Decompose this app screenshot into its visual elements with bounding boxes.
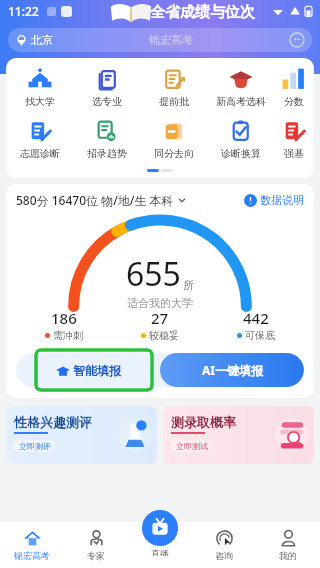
staticText: 可保底 (245, 329, 275, 342)
staticText: 提前批 (159, 95, 189, 108)
staticText: 立即测评 (19, 441, 51, 451)
button[interactable]: 专家 (64, 522, 128, 568)
button[interactable]: 同分去向 (140, 116, 207, 162)
staticText: 直播 (151, 548, 169, 556)
staticText: 智能填报 (73, 363, 121, 378)
staticText: 立即测试 (176, 441, 208, 451)
staticText: 数据说明 (260, 193, 304, 207)
staticText: 选专业 (92, 95, 122, 108)
button[interactable]: 招录趋势 (73, 116, 140, 162)
button[interactable]: 智能填报 (16, 353, 160, 387)
staticText: 北京 (31, 33, 53, 47)
button[interactable]: Customer service (290, 33, 304, 47)
staticText: 我的 (279, 550, 297, 561)
staticText: 专家 (87, 550, 105, 561)
button[interactable]: 直播 (142, 510, 178, 546)
button[interactable]: 我的 (256, 522, 320, 568)
button[interactable]: 性格兴趣测评 (6, 406, 157, 464)
staticText: 志愿诊断 (20, 147, 60, 160)
button[interactable]: 测录取概率 (163, 406, 314, 464)
staticText: 锦宏高考 (149, 33, 193, 47)
staticText: 同分去向 (154, 147, 194, 160)
staticText: 咨询 (215, 550, 233, 561)
button[interactable]: 数据说明 (244, 193, 304, 207)
staticText: 27 (151, 308, 169, 328)
staticText: 分数 (284, 95, 304, 108)
button[interactable]: 强基 (274, 116, 314, 162)
staticText: 找大学 (25, 95, 55, 108)
button[interactable]: 找大学 (6, 64, 73, 110)
staticText: 招录趋势 (87, 147, 127, 160)
staticText: 诊断换算 (221, 147, 261, 160)
staticText: 580分 16470位 物/地/生 本科 (16, 192, 174, 208)
staticText: 全省成绩与位次 (150, 3, 255, 22)
staticText: AI一键填报 (202, 362, 263, 378)
staticText: 较稳妥 (149, 329, 179, 342)
button[interactable]: 580分 16470位 物/地/生 本科 (16, 192, 187, 208)
staticText: 锦宏高考 (14, 550, 50, 561)
button[interactable]: 咨询 (192, 522, 256, 568)
staticText: 11:22 (8, 3, 39, 19)
staticText: 655 (126, 252, 181, 296)
button[interactable]: 诊断换算 (207, 116, 274, 162)
button[interactable]: 志愿诊断 (6, 116, 73, 162)
staticText: 需冲刺 (53, 329, 83, 342)
staticText: 所 (183, 278, 194, 292)
button[interactable]: 新高考选科 (207, 64, 274, 110)
button[interactable]: 提前批 (140, 64, 207, 110)
staticText: 新高考选科 (216, 95, 266, 108)
staticText: 442 (243, 308, 269, 328)
button[interactable]: 锦宏高考 (0, 522, 64, 568)
staticText: 适合我的大学 (127, 296, 193, 310)
staticText: 测录取概率 (171, 414, 236, 430)
staticText: 186 (51, 308, 77, 328)
button[interactable]: AI一键填报 (160, 353, 304, 387)
button[interactable]: 选专业 (73, 64, 140, 110)
button[interactable]: 分数 (274, 64, 314, 110)
staticText: 强基 (284, 147, 304, 160)
button[interactable]: 北京 (8, 28, 312, 52)
staticText: 性格兴趣测评 (14, 414, 92, 430)
